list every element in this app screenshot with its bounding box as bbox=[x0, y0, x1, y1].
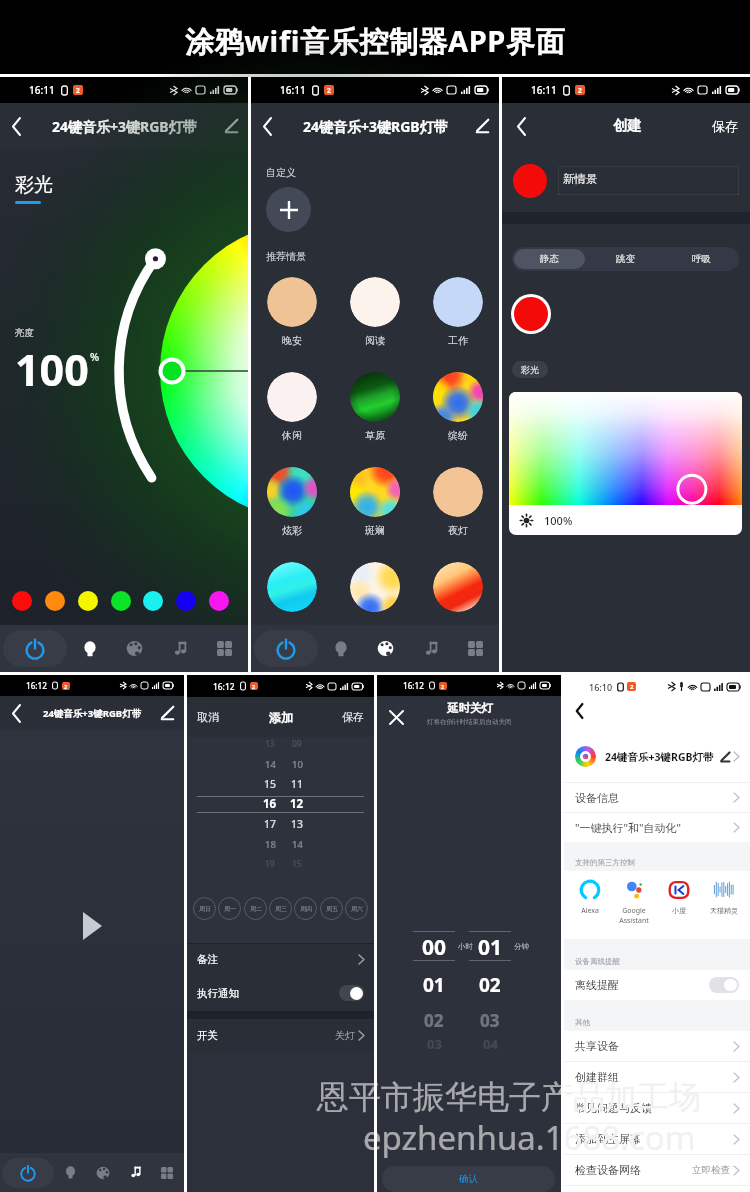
button[interactable]: 创建群组 bbox=[575, 1062, 739, 1092]
button[interactable]: Music bbox=[119, 1153, 151, 1192]
staticText: 2 bbox=[441, 683, 445, 690]
button[interactable]: 周六 bbox=[345, 897, 368, 920]
staticText: 静态 bbox=[540, 253, 559, 265]
button[interactable]: Scene bbox=[267, 562, 317, 612]
button[interactable]: 静态 bbox=[514, 249, 585, 269]
button[interactable]: 执行通知 bbox=[197, 975, 364, 1011]
staticText: 缤纷 bbox=[448, 429, 468, 442]
button[interactable]: Color bbox=[45, 591, 65, 611]
button[interactable]: 工作 bbox=[433, 277, 483, 347]
button[interactable]: Back bbox=[0, 103, 34, 149]
button[interactable]: Color bbox=[209, 591, 229, 611]
button[interactable]: 缤纷 bbox=[433, 372, 483, 442]
button[interactable]: Music bbox=[157, 625, 202, 672]
button[interactable]: Colors bbox=[112, 625, 157, 672]
button[interactable]: Back bbox=[0, 696, 34, 730]
button[interactable]: 取消 bbox=[197, 710, 219, 724]
button[interactable]: 离线提醒 bbox=[575, 970, 739, 1000]
button[interactable]: Light bbox=[67, 625, 112, 672]
button[interactable]: 周四 bbox=[294, 897, 317, 920]
button[interactable]: "一键执行"和"自动化" bbox=[575, 813, 739, 842]
button[interactable]: 彩光 bbox=[512, 361, 548, 378]
button[interactable]: Play bbox=[83, 912, 102, 940]
button[interactable]: 24键音乐+3键RGB灯带 bbox=[575, 731, 739, 782]
button[interactable]: Add scene bbox=[266, 187, 311, 232]
staticText: 01 bbox=[478, 933, 503, 960]
button[interactable]: Back bbox=[571, 702, 589, 720]
staticText: 阅读 bbox=[365, 334, 385, 347]
staticText: 休闲 bbox=[282, 429, 302, 442]
button[interactable]: Alexa bbox=[568, 871, 612, 939]
button[interactable]: 炫彩 bbox=[267, 467, 317, 537]
button[interactable]: Color bbox=[12, 591, 32, 611]
staticText: 开关 bbox=[197, 1029, 218, 1042]
button[interactable]: Color bbox=[78, 591, 98, 611]
button[interactable]: Power bbox=[2, 1158, 54, 1188]
button[interactable]: Scene bbox=[433, 562, 483, 612]
button[interactable]: Selected color bbox=[514, 297, 548, 331]
button[interactable]: 小度 bbox=[656, 871, 701, 939]
staticText: 常见问题与反馈 bbox=[575, 1101, 652, 1115]
button[interactable]: Light bbox=[318, 625, 363, 672]
button[interactable]: 开关 bbox=[197, 1019, 364, 1052]
button[interactable]: 新情景 bbox=[558, 166, 739, 195]
button[interactable]: Scene bbox=[350, 562, 400, 612]
button[interactable]: Colors bbox=[87, 1153, 119, 1192]
button[interactable]: Edit bbox=[214, 103, 248, 149]
button[interactable]: 阅读 bbox=[350, 277, 400, 347]
button[interactable]: Edit bbox=[150, 696, 184, 730]
button[interactable]: 周三 bbox=[269, 897, 292, 920]
button[interactable]: 保存 bbox=[342, 710, 364, 724]
staticText: 小度 bbox=[672, 906, 686, 915]
button[interactable]: 斑斓 bbox=[350, 467, 400, 537]
button[interactable]: 常见问题与反馈 bbox=[575, 1093, 739, 1123]
button[interactable]: Close bbox=[385, 706, 407, 728]
button[interactable]: 确认 bbox=[382, 1166, 555, 1192]
button[interactable]: 检查设备网络 bbox=[575, 1155, 739, 1185]
staticText: 工作 bbox=[448, 334, 468, 347]
staticText: 炫彩 bbox=[282, 524, 302, 537]
staticText: 16:12 bbox=[26, 680, 47, 691]
button[interactable]: 周二 bbox=[244, 897, 267, 920]
button[interactable]: 呼吸 bbox=[665, 249, 737, 269]
staticText: 晚安 bbox=[282, 334, 302, 347]
staticText: 2 bbox=[327, 86, 331, 95]
button[interactable]: More bbox=[151, 1153, 183, 1192]
button[interactable]: Colors bbox=[363, 625, 408, 672]
button[interactable]: 备注 bbox=[197, 944, 364, 975]
button[interactable]: Back bbox=[502, 103, 542, 149]
button[interactable]: 休闲 bbox=[267, 372, 317, 442]
button[interactable]: 添加到主屏幕 bbox=[575, 1124, 739, 1154]
staticText: 斑斓 bbox=[365, 524, 385, 537]
button[interactable]: 天猫精灵 bbox=[701, 871, 746, 939]
button[interactable]: Back bbox=[251, 103, 285, 149]
button[interactable]: Music bbox=[408, 625, 453, 672]
button[interactable]: 草原 bbox=[350, 372, 400, 442]
button[interactable]: Color bbox=[111, 591, 131, 611]
button[interactable]: 设备信息 bbox=[575, 783, 739, 812]
button[interactable]: 保存 bbox=[712, 118, 738, 134]
button[interactable]: Power bbox=[254, 630, 318, 667]
button[interactable]: Color bbox=[176, 591, 196, 611]
staticText: 立即检查 bbox=[692, 1164, 730, 1176]
button[interactable]: Power bbox=[3, 630, 67, 667]
button[interactable]: More bbox=[453, 625, 498, 672]
button[interactable]: Color bbox=[143, 591, 163, 611]
button[interactable]: 跳变 bbox=[589, 249, 661, 269]
staticText: 呼吸 bbox=[692, 253, 711, 265]
button[interactable]: 周一 bbox=[218, 897, 241, 920]
button[interactable]: 共享设备 bbox=[575, 1031, 739, 1061]
staticText: 备注 bbox=[197, 953, 218, 966]
button[interactable]: 周日 bbox=[193, 897, 216, 920]
button[interactable]: Edit bbox=[465, 103, 499, 149]
button[interactable]: Google Assistant bbox=[612, 871, 656, 939]
button[interactable]: Light bbox=[54, 1153, 87, 1192]
button[interactable]: More bbox=[202, 625, 247, 672]
button[interactable]: 晚安 bbox=[267, 277, 317, 347]
staticText: 自定义 bbox=[266, 166, 296, 179]
button[interactable]: 周五 bbox=[320, 897, 343, 920]
button[interactable]: 夜灯 bbox=[433, 467, 483, 537]
staticText: 关灯 bbox=[335, 1029, 355, 1042]
button[interactable]: Scene color bbox=[513, 164, 547, 198]
staticText: "一键执行"和"自动化" bbox=[575, 820, 681, 835]
